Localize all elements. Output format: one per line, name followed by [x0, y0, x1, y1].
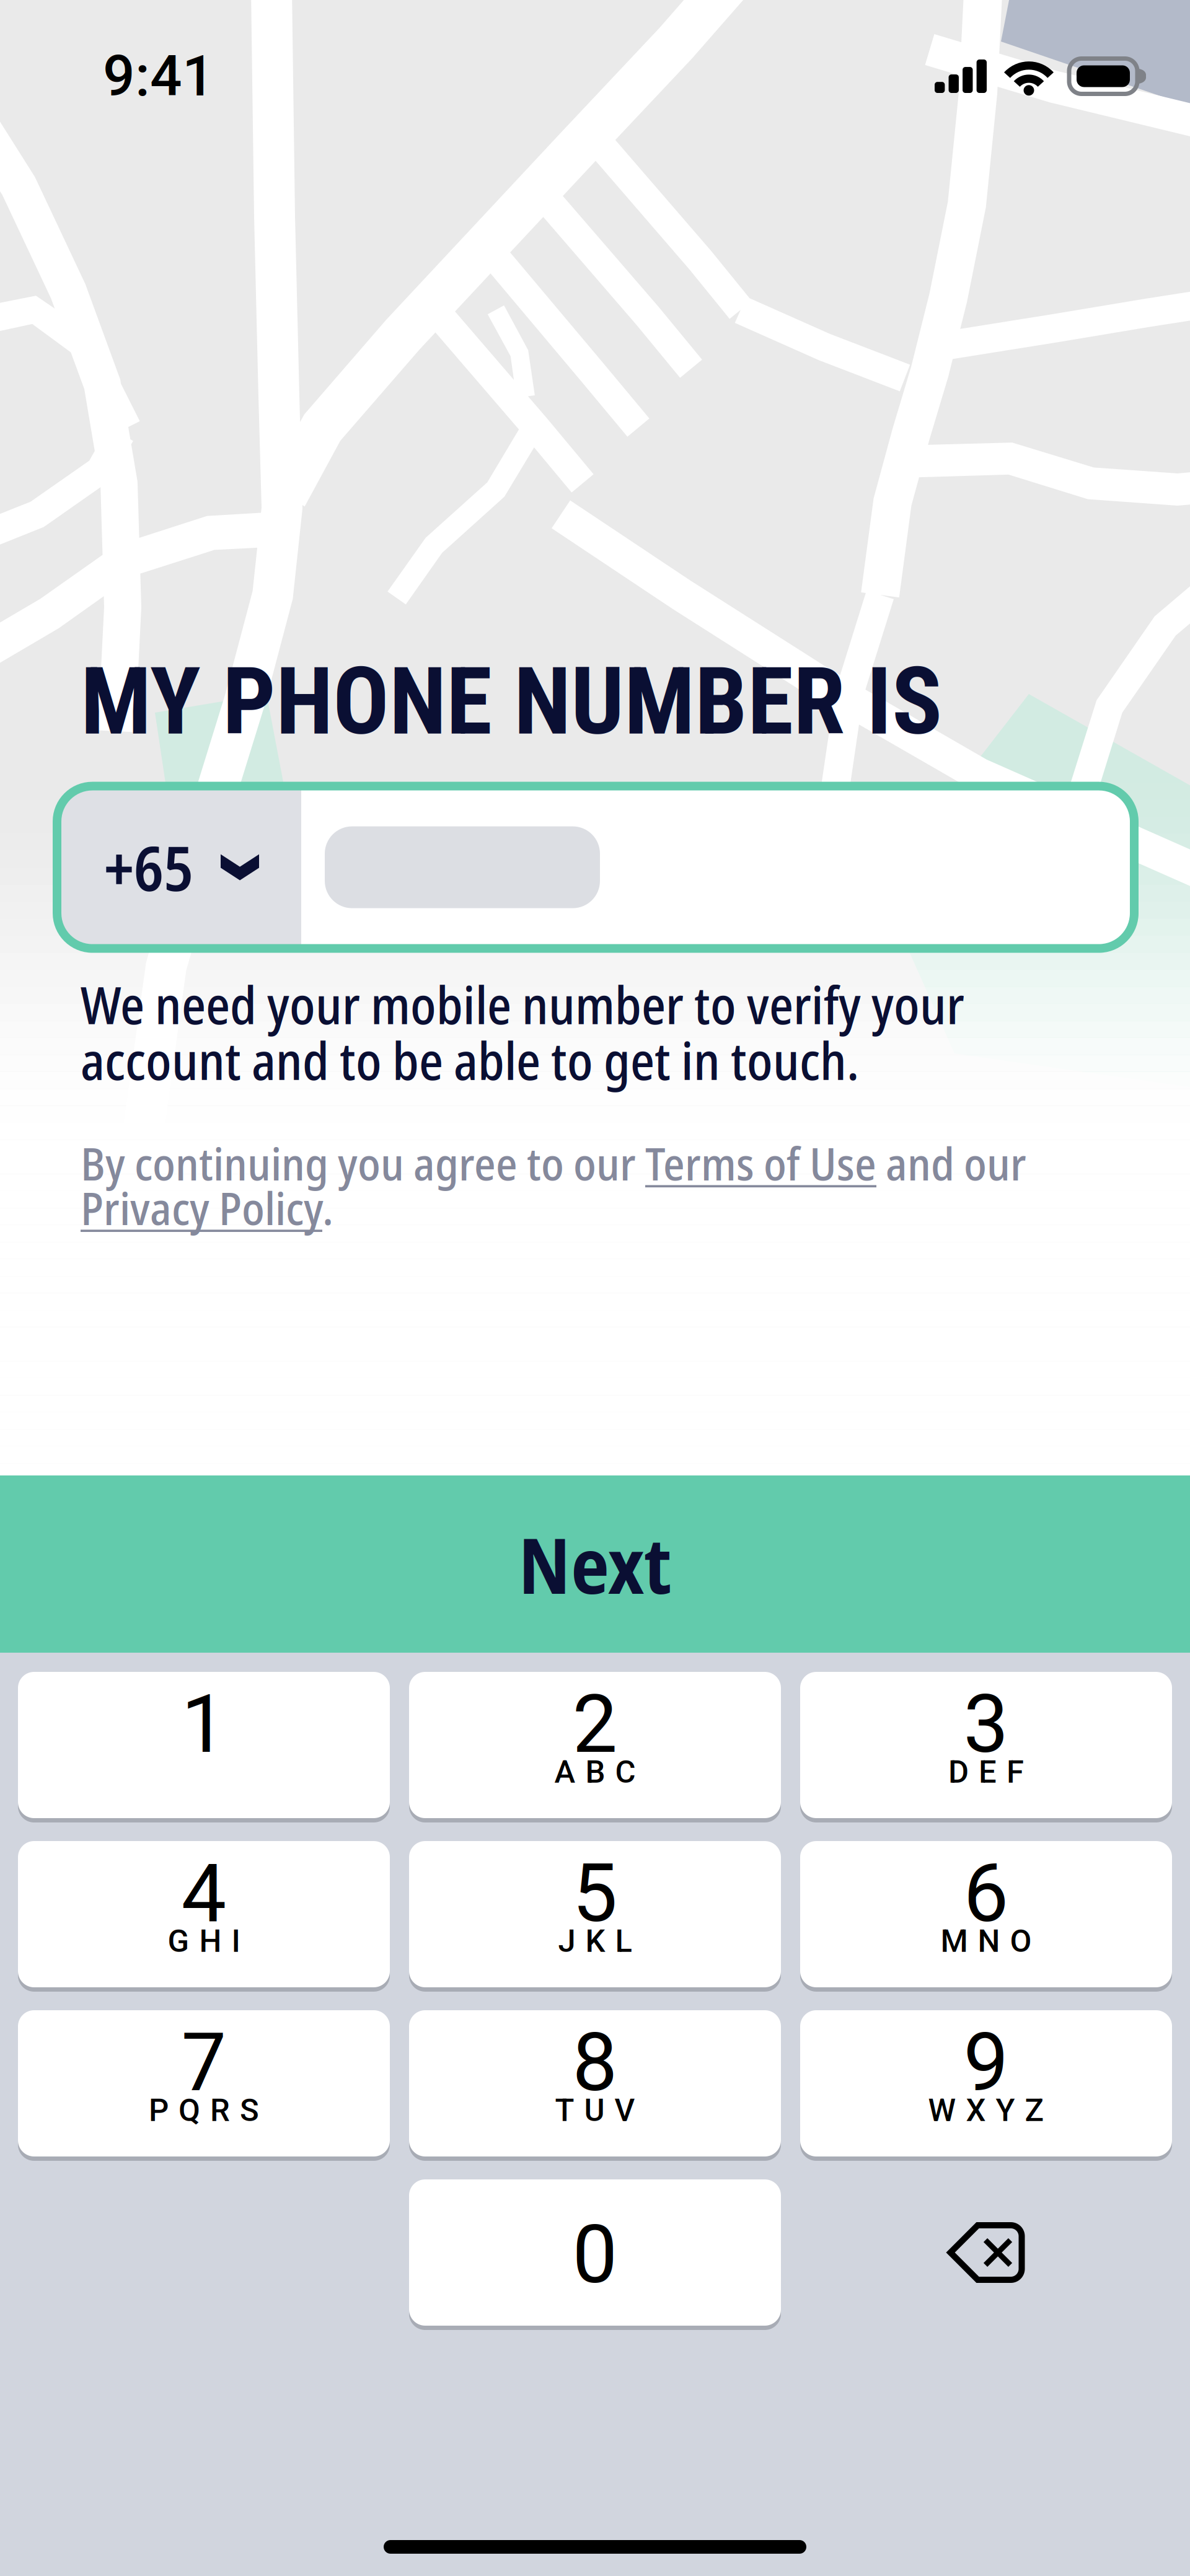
staticText: 2 [572, 1677, 618, 1771]
staticText: 8 [572, 2016, 618, 2110]
staticText: Next [518, 1512, 672, 1616]
button[interactable]: 3 [800, 1672, 1172, 1818]
staticText: 7 [181, 2016, 227, 2110]
button[interactable]: 4 [18, 1841, 390, 1987]
staticText: MY PHONE NUMBER IS [81, 647, 942, 756]
staticText: TUV [555, 2092, 635, 2129]
staticText: 5 [572, 1847, 618, 1941]
staticText: JKL [558, 1923, 632, 1959]
staticText: 0 [572, 2208, 618, 2302]
button[interactable]: 2 [409, 1672, 781, 1818]
staticText: WXYZ [928, 2092, 1044, 2129]
staticText: 6 [963, 1847, 1009, 1941]
button[interactable]: Next [0, 1475, 1190, 1653]
button[interactable]: 8 [409, 2010, 781, 2156]
staticText: DEF [948, 1753, 1024, 1790]
button[interactable]: 5 [409, 1841, 781, 1987]
staticText: 3 [963, 1677, 1009, 1771]
staticText: +65 [104, 826, 193, 909]
staticText: ABC [554, 1753, 636, 1790]
staticText: 9:41 [103, 43, 214, 109]
button[interactable]: +65 [57, 786, 301, 948]
staticText: 9 [963, 2016, 1009, 2110]
staticText: GHI [168, 1923, 240, 1959]
button[interactable]: 6 [800, 1841, 1172, 1987]
button[interactable]: 9 [800, 2010, 1172, 2156]
button[interactable]: 0 [409, 2179, 781, 2326]
staticText: PQRS [149, 2092, 259, 2129]
staticText: MNO [941, 1923, 1032, 1959]
button[interactable]: Delete [800, 2179, 1172, 2326]
staticText: We need your mobile number to verify you… [81, 976, 964, 1088]
button[interactable]: 7 [18, 2010, 390, 2156]
staticText: 4 [181, 1847, 227, 1941]
staticText: 1 [181, 1677, 227, 1771]
staticText: By continuing you agree to our Terms of … [81, 1141, 1026, 1230]
button[interactable]: 1 [18, 1672, 390, 1818]
